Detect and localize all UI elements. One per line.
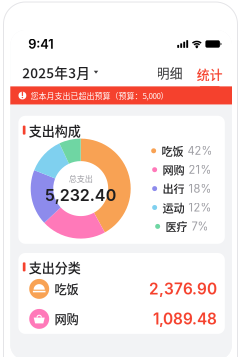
staticText: 吃饭 xyxy=(161,143,183,159)
staticText: 出行 xyxy=(162,180,184,197)
button[interactable]: 明细 xyxy=(154,57,186,87)
staticText: 医疗 xyxy=(165,218,187,234)
button[interactable]: 吃饭 xyxy=(18,274,225,304)
staticText: 5,232.40 xyxy=(45,186,117,205)
button[interactable]: 网购 xyxy=(18,304,225,334)
staticText: 您本月支出已超出预算（预算：5,000） xyxy=(31,90,169,101)
button[interactable]: 2025年3月 xyxy=(22,56,98,88)
staticText: 网购 xyxy=(162,162,184,178)
staticText: 12% xyxy=(188,201,211,214)
staticText: 7% xyxy=(191,220,208,233)
staticText: 21% xyxy=(188,163,211,176)
staticText: 总支出 xyxy=(69,172,93,184)
staticText: 1,089.48 xyxy=(153,310,217,328)
staticText: ! xyxy=(21,90,24,100)
staticText: 42% xyxy=(187,144,212,157)
staticText: 统计 xyxy=(197,64,223,83)
staticText: 明细 xyxy=(157,63,183,81)
button[interactable]: 统计 xyxy=(186,56,224,88)
staticText: 2,376.90 xyxy=(149,280,217,298)
staticText: 吃饭 xyxy=(54,280,78,298)
staticText: 2025年3月 xyxy=(22,62,90,82)
staticText: 运动 xyxy=(162,199,184,216)
staticText: 支出分类 xyxy=(29,257,81,276)
staticText: 支出构成 xyxy=(29,121,81,139)
staticText: 9:41 xyxy=(28,36,53,52)
staticText: 18% xyxy=(188,182,211,195)
staticText: 网购 xyxy=(54,310,78,328)
